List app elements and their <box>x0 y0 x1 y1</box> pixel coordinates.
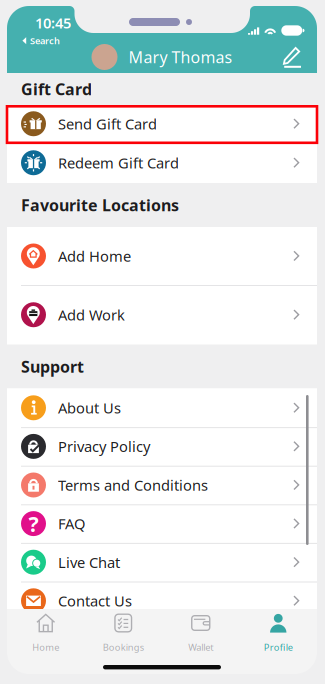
button[interactable]: Send Gift Card <box>7 105 317 142</box>
staticText: Support <box>21 356 84 377</box>
button[interactable]: Home <box>7 613 84 661</box>
staticText: Wallet <box>188 641 213 653</box>
staticText: ? <box>28 509 38 538</box>
staticText: Redeem Gift Card <box>58 153 179 172</box>
button[interactable]: Terms and Conditions <box>7 466 317 504</box>
button[interactable]: About Us <box>7 388 317 427</box>
button[interactable]: Wallet <box>162 613 239 661</box>
button[interactable]: Contact Us <box>7 581 317 620</box>
staticText: Add Home <box>58 246 131 266</box>
staticText: FAQ <box>58 514 85 533</box>
button[interactable]: Search <box>7 34 60 47</box>
staticText: Gift Card <box>21 78 92 100</box>
staticText: Favourite Locations <box>21 194 179 216</box>
staticText: About Us <box>58 398 121 418</box>
button[interactable]: ? <box>7 504 317 543</box>
button[interactable]: Profile <box>239 613 317 661</box>
staticText: Send Gift Card <box>58 114 157 133</box>
staticText: Profile <box>264 641 293 653</box>
staticText: Contact Us <box>58 591 132 611</box>
staticText: 10:45 <box>35 13 71 32</box>
staticText: Live Chat <box>58 552 120 572</box>
staticText: Add Work <box>58 305 125 324</box>
staticText: Privacy Policy <box>58 437 150 456</box>
staticText: Home <box>32 641 59 653</box>
staticText: Terms and Conditions <box>58 475 208 495</box>
button[interactable]: Add Work <box>7 285 317 344</box>
button[interactable]: Live Chat <box>7 543 317 581</box>
button[interactable]: Edit profile <box>7 6 302 68</box>
button[interactable]: Add Home <box>7 227 317 285</box>
button[interactable]: Redeem Gift Card <box>7 142 317 183</box>
staticText: Bookings <box>103 641 144 653</box>
button[interactable]: Bookings <box>84 613 162 661</box>
button[interactable]: Privacy Policy <box>7 427 317 466</box>
staticText: Search <box>30 34 60 47</box>
staticText: Mary Thomas <box>128 46 232 68</box>
